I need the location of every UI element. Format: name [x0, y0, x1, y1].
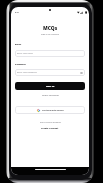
staticText: Forgot Password? — [42, 94, 59, 97]
staticText: Enter your password — [17, 71, 37, 74]
button[interactable]: Forgot Password? — [11, 93, 89, 98]
staticText: Sign In — [46, 85, 55, 88]
staticText: Sign in to continue — [41, 33, 59, 36]
button[interactable]: Sign In — [15, 82, 85, 90]
staticText: Enter your email — [17, 52, 33, 55]
button[interactable]: Enter your password — [17, 69, 83, 76]
staticText: Password — [15, 63, 26, 66]
other: Show password — [80, 72, 83, 74]
staticText: Don't have an account? — [40, 121, 61, 124]
button[interactable]: Enter your email — [17, 50, 83, 57]
staticText: MCQs — [43, 25, 58, 32]
staticText: Create Account — [41, 127, 59, 130]
button[interactable]: Create Account — [11, 126, 89, 131]
staticText: Continue with Google — [42, 109, 64, 112]
button[interactable]: Continue with Google — [15, 106, 85, 114]
staticText: Email — [15, 43, 22, 46]
staticText: 9:41 — [15, 11, 19, 14]
